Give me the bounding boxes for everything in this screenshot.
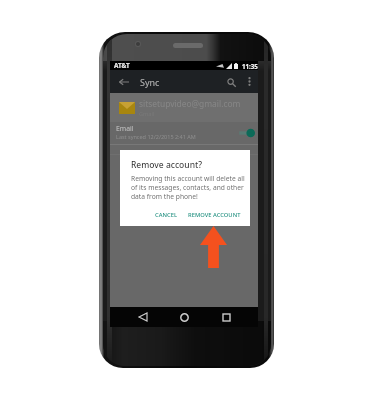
staticText: Removing this account will delete all of… bbox=[131, 174, 245, 201]
button[interactable]: Email sync on bbox=[237, 127, 256, 139]
button[interactable]: More options bbox=[244, 76, 255, 87]
staticText: Last synced 12/2/2015 2:41 AM bbox=[116, 133, 196, 140]
staticText: Remove account? bbox=[131, 159, 203, 171]
staticText: CANCEL bbox=[155, 211, 177, 219]
staticText: AT&T bbox=[114, 61, 130, 70]
button[interactable]: sitsetupvideo@gmail.com bbox=[110, 93, 258, 122]
button[interactable]: Search bbox=[223, 74, 239, 90]
staticText: REMOVE ACCOUNT bbox=[188, 211, 241, 219]
button[interactable]: Email bbox=[110, 122, 258, 144]
button[interactable]: Back bbox=[134, 308, 152, 326]
staticText: 11:35 bbox=[242, 62, 258, 70]
button[interactable]: CANCEL bbox=[151, 209, 181, 221]
staticText: Sync bbox=[140, 76, 160, 88]
staticText: Email bbox=[116, 124, 134, 133]
staticText: sitsetupvideo@gmail.com bbox=[139, 98, 241, 109]
button[interactable]: Navigate up bbox=[116, 74, 132, 90]
button[interactable]: Home bbox=[175, 308, 193, 326]
button[interactable]: Recent apps bbox=[217, 308, 235, 326]
button[interactable]: REMOVE ACCOUNT bbox=[184, 209, 245, 221]
